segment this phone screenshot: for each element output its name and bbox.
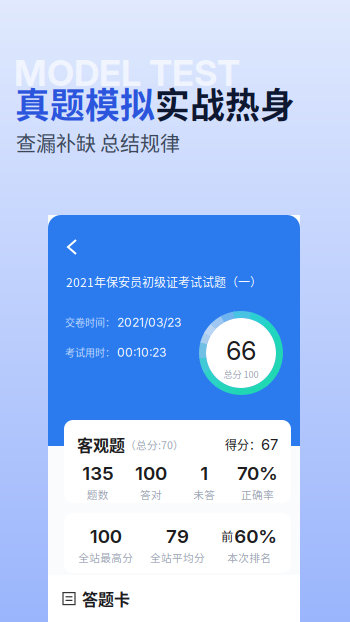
staticText: 全站最高分 xyxy=(78,550,133,565)
button[interactable]: Back xyxy=(59,234,85,260)
staticText: 考试用时： xyxy=(65,345,115,359)
staticText: 2021/03/23 xyxy=(117,315,181,329)
staticText: 交卷时间： xyxy=(65,315,115,329)
staticText: （总分:70） xyxy=(125,437,184,452)
staticText: 未答 xyxy=(193,487,215,502)
staticText: 60% xyxy=(234,525,277,548)
staticText: 正确率 xyxy=(241,487,274,502)
staticText: 客观题 xyxy=(77,433,125,456)
staticText: 67 xyxy=(261,436,278,453)
staticText: 66 xyxy=(226,335,256,366)
staticText: 前 xyxy=(221,528,233,545)
staticText: 真题模拟 xyxy=(15,78,155,128)
staticText: 答题卡 xyxy=(82,587,130,610)
staticText: 题数 xyxy=(87,487,109,502)
staticText: 1 xyxy=(200,462,208,485)
staticText: 2021年保安员初级证考试试题（一） xyxy=(66,273,262,290)
staticText: 总分 100 xyxy=(223,367,258,381)
staticText: 100 xyxy=(135,462,167,485)
staticText: 70% xyxy=(237,462,278,485)
staticText: 100 xyxy=(90,525,122,548)
staticText: 答对 xyxy=(140,487,162,502)
staticText: 得分： xyxy=(225,436,261,453)
button[interactable]: 答题卡 xyxy=(56,581,136,616)
staticText: 135 xyxy=(82,462,113,485)
staticText: 00:10:23 xyxy=(117,345,166,359)
staticText: 本次排名 xyxy=(227,550,271,565)
staticText: MODEL TEST xyxy=(14,51,240,95)
staticText: 实战热身 xyxy=(155,78,295,128)
staticText: 查漏补缺 总结规律 xyxy=(16,128,180,157)
staticText: 全站平均分 xyxy=(150,550,205,565)
staticText: 79 xyxy=(166,525,189,548)
